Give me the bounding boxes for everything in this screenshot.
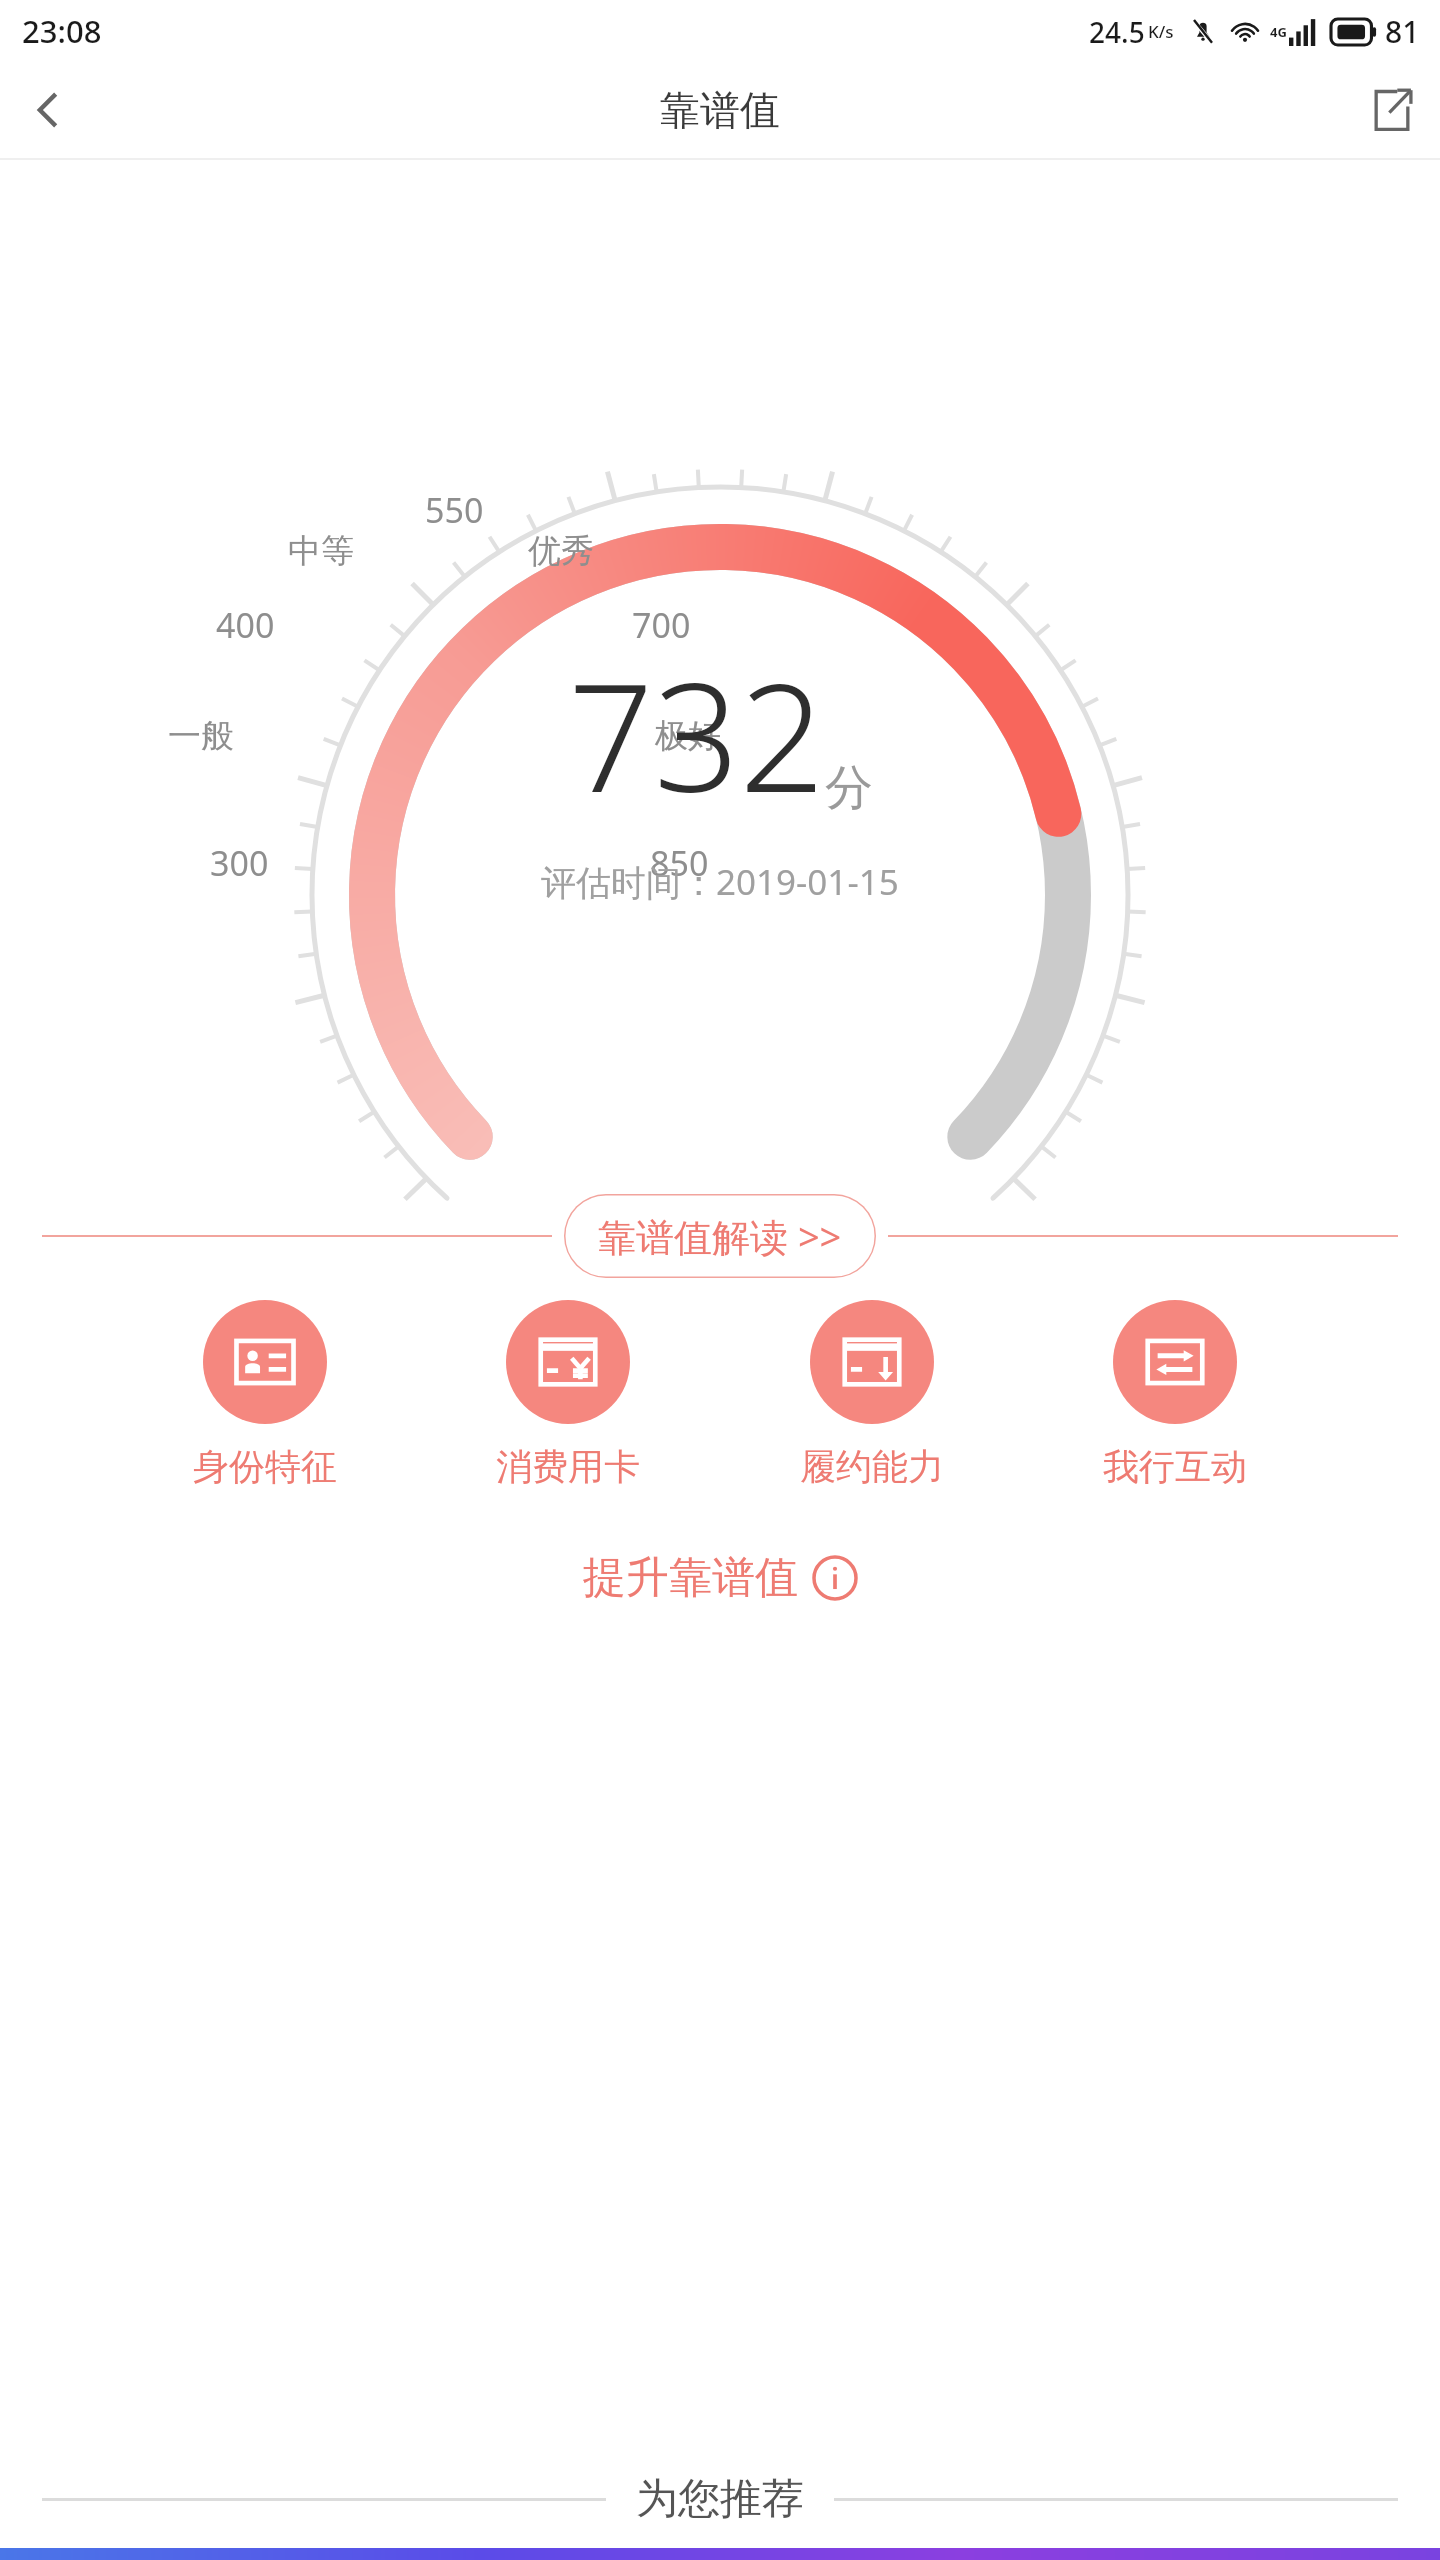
- staticText: 550: [425, 487, 484, 533]
- button[interactable]: 我行互动: [1097, 1300, 1253, 1489]
- staticText: 4G: [1270, 23, 1287, 41]
- staticText: 300: [210, 840, 269, 886]
- staticText: 履约能力: [800, 1444, 944, 1489]
- button[interactable]: 身份特征: [187, 1300, 343, 1489]
- button[interactable]: 消费用卡: [490, 1300, 646, 1489]
- button[interactable]: Back: [0, 62, 96, 158]
- staticText: 23:08: [22, 10, 102, 52]
- staticText: 850: [650, 840, 709, 886]
- button[interactable]: 靠谱值解读 >>: [564, 1194, 876, 1278]
- staticText: 400: [216, 602, 275, 648]
- staticText: 优秀: [528, 530, 594, 572]
- staticText: 分: [825, 758, 873, 818]
- staticText: 中等: [288, 530, 354, 572]
- button[interactable]: Share: [1344, 62, 1440, 158]
- button[interactable]: 履约能力: [794, 1300, 950, 1489]
- staticText: 靠谱值解读 >>: [598, 1210, 842, 1262]
- staticText: 24.5: [1089, 13, 1145, 51]
- staticText: 为您推荐: [636, 2473, 804, 2526]
- staticText: 81: [1385, 11, 1420, 52]
- staticText: 靠谱值: [660, 85, 780, 135]
- staticText: 身份特征: [193, 1444, 337, 1489]
- staticText: 极好: [655, 715, 721, 757]
- staticText: 评估时间：2019-01-15: [541, 858, 899, 906]
- button[interactable]: 提升靠谱值: [563, 1541, 878, 1615]
- staticText: 一般: [168, 715, 234, 757]
- staticText: 提升靠谱值: [583, 1551, 798, 1605]
- staticText: 732: [568, 632, 825, 836]
- staticText: 700: [632, 602, 691, 648]
- staticText: 我行互动: [1103, 1444, 1247, 1489]
- staticText: 消费用卡: [496, 1444, 640, 1489]
- staticText: K/s: [1148, 20, 1174, 43]
